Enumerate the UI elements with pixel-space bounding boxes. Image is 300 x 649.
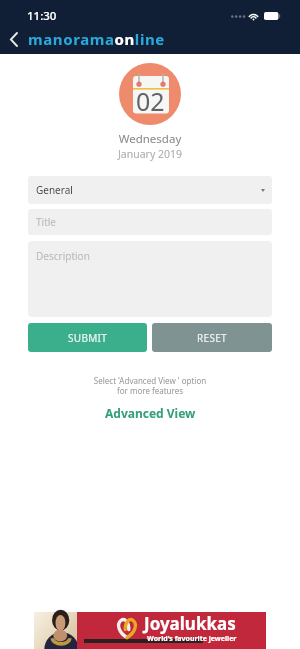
staticText: manoramaonline — [28, 29, 165, 49]
staticText: Title — [36, 215, 56, 229]
button[interactable]: Description — [28, 241, 272, 317]
staticText: RESET — [197, 331, 227, 345]
staticText: 02 — [136, 84, 165, 118]
staticText: Description — [36, 249, 90, 263]
button[interactable]: General — [28, 176, 272, 204]
staticText: Advanced View — [105, 405, 196, 421]
staticText: Select 'Advanced View ' option for more … — [0, 375, 300, 396]
button[interactable]: Back — [0, 26, 26, 52]
staticText: SUBMIT — [68, 331, 108, 345]
button[interactable]: SUBMIT — [28, 323, 147, 352]
staticText: Wednesday — [0, 131, 300, 147]
staticText: January 2019 — [0, 147, 300, 161]
button[interactable]: Advanced View — [99, 403, 202, 423]
staticText: World's favourite jeweller — [147, 634, 237, 644]
button[interactable]: RESET — [152, 323, 272, 352]
staticText: General — [36, 183, 73, 197]
staticText: Joyalukkas — [144, 612, 236, 635]
staticText: 11:30 — [27, 8, 57, 24]
button[interactable]: Joyalukkas advertisement — [34, 612, 266, 649]
button[interactable]: Title — [28, 209, 272, 235]
